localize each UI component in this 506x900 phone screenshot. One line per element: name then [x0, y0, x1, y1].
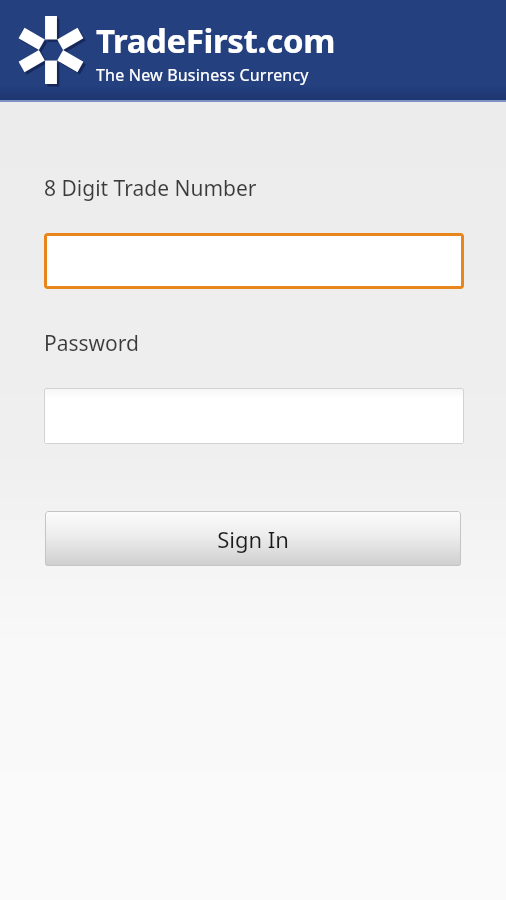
staticText: Sign In: [217, 524, 289, 554]
staticText: Password: [44, 329, 139, 358]
staticText: TradeFirst.com: [96, 18, 335, 63]
button[interactable]: Sign In: [45, 511, 461, 566]
button[interactable]: Password input: [44, 388, 464, 444]
staticText: 8 Digit Trade Number: [44, 174, 257, 203]
button[interactable]: 8 Digit Trade Number input: [44, 233, 464, 289]
staticText: The New Business Currency: [96, 64, 309, 86]
